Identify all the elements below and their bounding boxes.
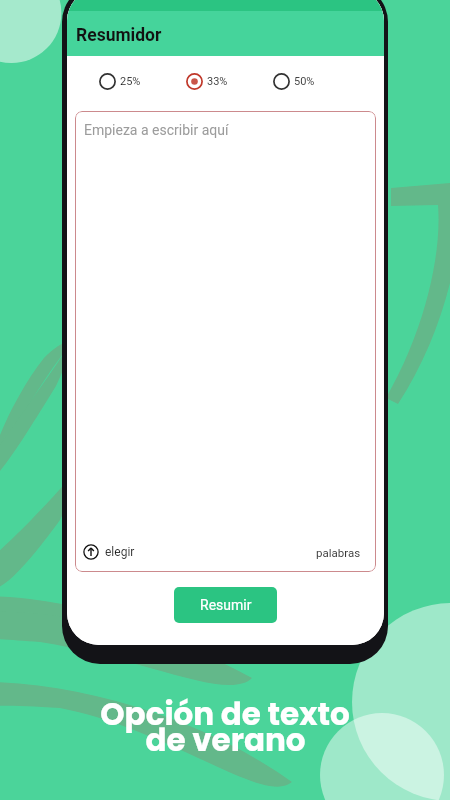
staticText: 25% — [120, 75, 141, 88]
staticText: Resumir — [200, 597, 252, 613]
button[interactable]: elegir — [83, 544, 135, 560]
staticText: Opción de texto — [100, 692, 350, 735]
staticText: 50% — [294, 75, 315, 88]
staticText: elegir — [105, 545, 135, 559]
button[interactable]: 33% — [186, 73, 273, 90]
staticText: Empieza a escribir aquí — [84, 122, 229, 138]
staticText: 33% — [207, 75, 228, 88]
button[interactable]: Resumir — [174, 587, 277, 623]
staticText: Resumidor — [76, 25, 162, 46]
button[interactable]: 50% — [273, 73, 360, 90]
button[interactable]: 25% — [99, 73, 186, 90]
button[interactable]: Empieza a escribir aquí — [75, 111, 376, 572]
staticText: palabras — [316, 546, 361, 559]
staticText: de verano — [145, 718, 306, 761]
